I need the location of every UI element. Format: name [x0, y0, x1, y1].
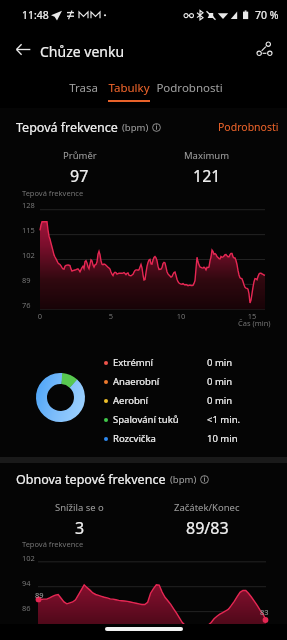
- staticText: 11:48: [22, 8, 49, 22]
- staticText: Spalování tuků: [113, 413, 179, 426]
- staticText: 0 min: [207, 356, 233, 369]
- staticText: 102: [22, 250, 35, 260]
- button[interactable]: Extrémní: [104, 353, 279, 372]
- staticText: Podrobnosti: [218, 120, 279, 134]
- button[interactable]: Spalování tuků: [104, 410, 279, 429]
- staticText: Rozcvička: [113, 432, 156, 445]
- staticText: 10 min: [207, 432, 238, 445]
- staticText: 0: [32, 311, 48, 321]
- staticText: 5: [103, 311, 119, 321]
- staticText: 89: [22, 275, 31, 285]
- staticText: Tepová frekvence: [22, 188, 84, 198]
- staticText: Trasa: [69, 80, 98, 96]
- staticText: 3: [75, 517, 85, 539]
- staticText: 0 min: [207, 375, 233, 388]
- button[interactable]: Share: [247, 32, 281, 66]
- staticText: 89: [35, 590, 44, 600]
- staticText: Maximum: [184, 149, 230, 162]
- staticText: 83: [260, 607, 269, 617]
- staticText: Obnova tepové frekvence: [16, 471, 166, 488]
- staticText: Anaerobní: [113, 375, 160, 388]
- staticText: 89/83: [186, 517, 229, 539]
- staticText: Podrobnosti: [156, 80, 223, 96]
- staticText: Chůze venku: [40, 42, 125, 61]
- staticText: Tabulky: [108, 80, 150, 96]
- staticText: 102: [22, 553, 35, 563]
- button[interactable]: Podrobnosti: [154, 80, 224, 108]
- button[interactable]: Podrobnosti: [214, 118, 283, 136]
- staticText: Extrémní: [113, 356, 154, 369]
- staticText: 94: [22, 578, 31, 588]
- staticText: 128: [22, 200, 35, 210]
- staticText: <1 min.: [207, 413, 241, 426]
- staticText: Aerobní: [113, 394, 149, 407]
- staticText: 121: [193, 165, 221, 187]
- button[interactable]: Tabulky: [108, 80, 150, 108]
- button[interactable]: Anaerobní: [104, 372, 279, 391]
- staticText: 76: [22, 300, 31, 310]
- staticText: 70 %: [255, 8, 279, 22]
- staticText: (bpm): [122, 121, 149, 134]
- staticText: 97: [70, 165, 89, 187]
- staticText: Tepová frekvence: [16, 119, 118, 136]
- button[interactable]: Trasa: [64, 80, 102, 108]
- staticText: 0 min: [207, 394, 233, 407]
- staticText: 115: [22, 225, 35, 235]
- staticText: Tepová frekvence: [22, 539, 84, 549]
- button[interactable]: Back: [6, 32, 40, 66]
- staticText: 10: [173, 311, 189, 321]
- button[interactable]: Aerobní: [104, 391, 279, 410]
- staticText: Čas (min): [238, 318, 271, 328]
- staticText: (bpm): [170, 473, 197, 486]
- staticText: 15: [244, 311, 260, 321]
- staticText: Průměr: [63, 149, 97, 162]
- button[interactable]: Rozcvička: [104, 429, 279, 448]
- staticText: Začátek/Konec: [174, 501, 240, 514]
- staticText: 86: [22, 603, 31, 613]
- staticText: Snížila se o: [55, 501, 104, 514]
